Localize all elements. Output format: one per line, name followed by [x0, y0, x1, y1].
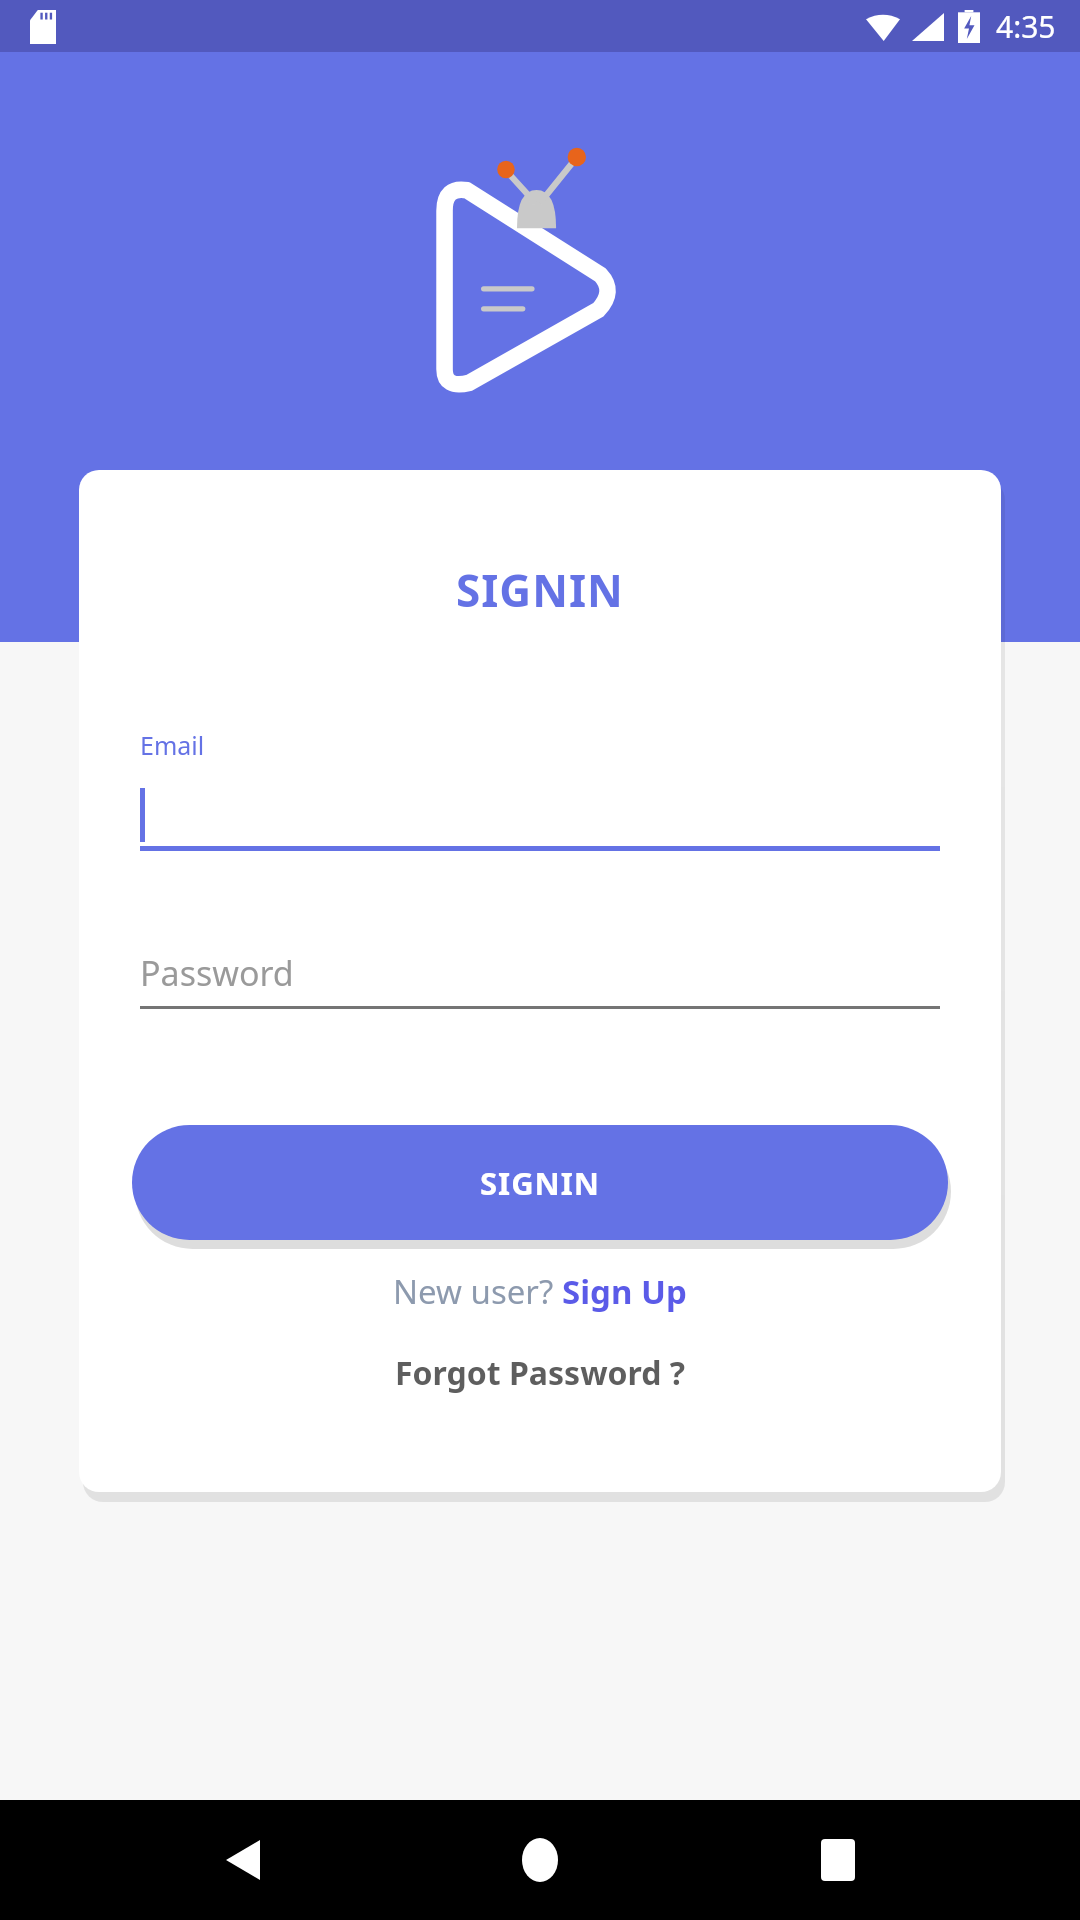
button[interactable]: New user?	[383, 1265, 697, 1318]
staticText: SIGNIN	[456, 560, 624, 620]
button[interactable]: SIGNIN	[132, 1125, 948, 1240]
staticText: Password	[140, 950, 294, 996]
staticText: Email	[140, 728, 205, 762]
staticText: New user?	[393, 1269, 562, 1314]
button[interactable]: Email	[140, 728, 940, 851]
button[interactable]: Recent apps	[783, 1805, 893, 1915]
staticText: SIGNIN	[480, 1162, 601, 1204]
staticText: Forgot Password ?	[395, 1351, 686, 1395]
staticText: 4:35	[996, 6, 1056, 47]
staticText: Sign Up	[562, 1269, 687, 1314]
button[interactable]: Password	[140, 940, 940, 1009]
button[interactable]: Forgot Password ?	[385, 1347, 696, 1399]
button[interactable]: Home	[485, 1805, 595, 1915]
button[interactable]: Back	[188, 1805, 298, 1915]
